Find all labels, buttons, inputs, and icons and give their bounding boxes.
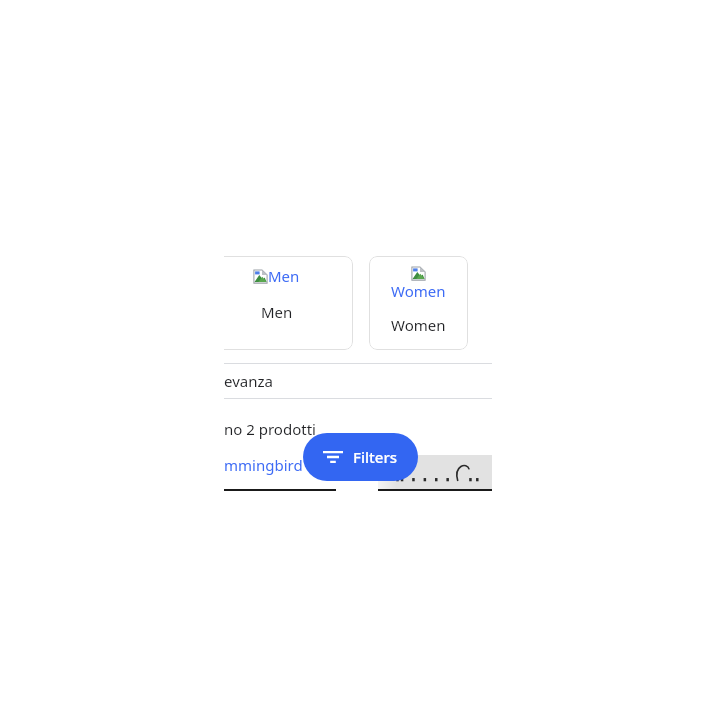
button[interactable]: Men <box>224 256 353 350</box>
button[interactable] <box>378 455 492 491</box>
staticText: no 2 prodotti <box>224 419 316 439</box>
button[interactable]: Filters <box>303 433 418 481</box>
button[interactable]: mmingbird <box>224 455 329 475</box>
button[interactable]: evanza <box>224 364 492 398</box>
staticText: evanza <box>224 371 273 391</box>
staticText: Women <box>391 281 446 301</box>
staticText: Filters <box>353 447 398 467</box>
staticText: Men <box>268 266 300 286</box>
button[interactable]: Quick view <box>309 455 329 475</box>
staticText: Women <box>391 315 446 335</box>
button[interactable]: Women <box>369 256 468 350</box>
staticText: mmingbird <box>224 455 303 475</box>
staticText: Men <box>261 302 293 322</box>
